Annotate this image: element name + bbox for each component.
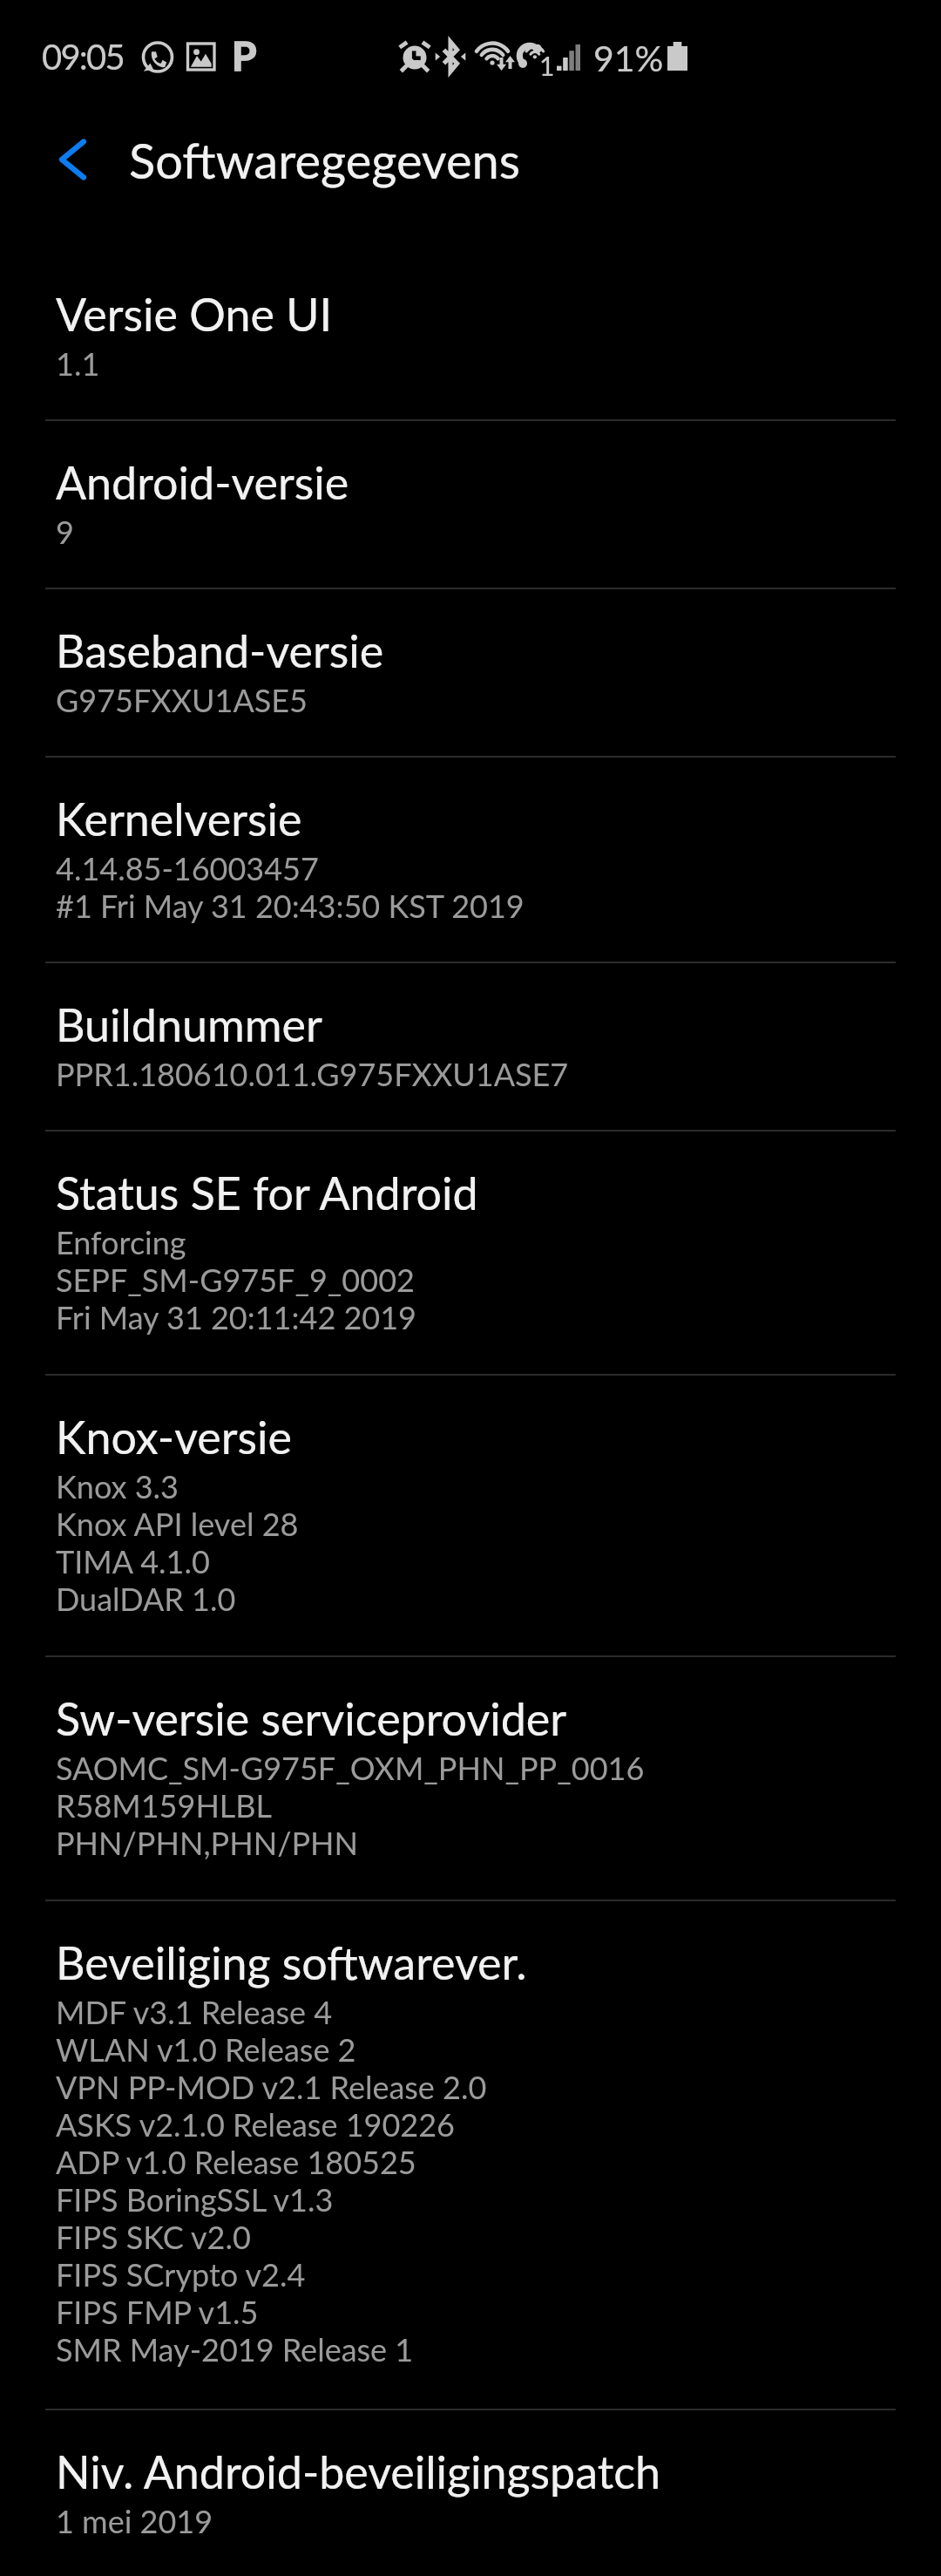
staticText: Status SE for Android [56, 1166, 478, 1220]
button[interactable]: Baseband-versie [0, 589, 941, 756]
button[interactable]: Beveiliging softwarever. [0, 1901, 941, 2409]
staticText: Niv. Android-beveiligingspatch [56, 2444, 661, 2498]
staticText: Versie One UI [56, 287, 332, 341]
button[interactable]: Buildnummer [0, 963, 941, 1130]
staticText: Buildnummer [56, 997, 322, 1051]
staticText: 1.1 [56, 344, 100, 382]
staticText: MDF v3.1 Release 4 WLAN v1.0 Release 2 V… [56, 1993, 487, 2368]
button[interactable]: Android-versie [0, 421, 941, 588]
button[interactable]: Sw-versie serviceprovider [0, 1657, 941, 1900]
button[interactable]: Status SE for Android [0, 1132, 941, 1374]
staticText: 09:05 [42, 36, 124, 78]
staticText: 9 [56, 513, 74, 550]
staticText: Enforcing SEPF_SM-G975F_9_0002 Fri May 3… [56, 1223, 416, 1336]
button[interactable]: Kernelversie [0, 758, 941, 962]
staticText: Beveiliging softwarever. [56, 1935, 527, 1989]
button[interactable]: Versie One UI [0, 253, 941, 419]
button[interactable]: Knox-versie [0, 1376, 941, 1655]
staticText: P [232, 31, 257, 79]
staticText: Knox-versie [56, 1410, 292, 1464]
staticText: 1 mei 2019 [56, 2502, 213, 2539]
staticText: G975FXXU1ASE5 [56, 681, 308, 718]
staticText: SAOMC_SM-G975F_OXM_PHN_PP_0016 R58M159HL… [56, 1749, 645, 1861]
staticText: PPR1.180610.011.G975FXXU1ASE7 [56, 1055, 569, 1092]
button[interactable]: Niv. Android-beveiligingspatch [0, 2410, 941, 2576]
staticText: 4.14.85-16003457 #1 Fri May 31 20:43:50 … [56, 849, 525, 924]
staticText: Knox 3.3 Knox API level 28 TIMA 4.1.0 Du… [56, 1467, 299, 1617]
button[interactable]: Back [33, 128, 113, 208]
staticText: Baseband-versie [56, 623, 384, 677]
staticText: Softwaregegevens [129, 131, 521, 189]
staticText: Sw-versie serviceprovider [56, 1691, 567, 1745]
staticText: Android-versie [56, 455, 349, 509]
staticText: Kernelversie [56, 792, 302, 846]
staticText: 91% [593, 37, 664, 79]
staticText: 1 [539, 50, 555, 81]
